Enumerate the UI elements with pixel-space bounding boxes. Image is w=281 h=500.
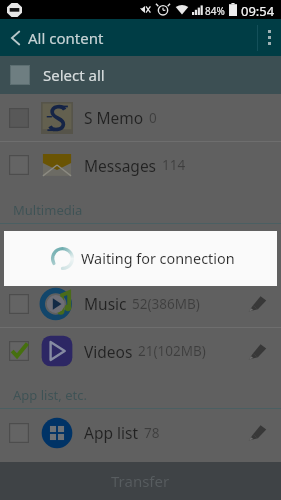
staticText: Select all — [43, 65, 105, 85]
staticText: 114 — [162, 156, 186, 174]
button[interactable]: S Memo — [0, 94, 281, 141]
button[interactable]: Music — [0, 280, 281, 327]
staticText: 78 — [144, 424, 160, 442]
staticText: 52(386MB) — [132, 295, 200, 313]
staticText: App list, etc. — [13, 386, 87, 404]
staticText: Messages — [84, 155, 157, 176]
staticText: Transfer — [111, 471, 170, 491]
button[interactable]: Photos — [0, 224, 281, 280]
button[interactable]: Videos — [0, 328, 281, 374]
staticText: Multimedia — [13, 201, 83, 219]
button[interactable]: Rename — [239, 224, 275, 280]
button[interactable]: App list — [0, 409, 281, 456]
button[interactable]: More options — [258, 19, 281, 56]
staticText: Waiting for connection — [81, 249, 235, 269]
staticText: 0 — [149, 109, 157, 127]
staticText: Photos — [84, 242, 135, 263]
staticText: 84% — [205, 4, 225, 18]
button[interactable]: Rename — [239, 328, 275, 374]
staticText: 21(102MB) — [138, 342, 206, 360]
staticText: 09:54 — [241, 2, 275, 20]
button[interactable]: All content — [0, 19, 112, 56]
staticText: Videos — [84, 341, 133, 362]
button[interactable]: Rename — [239, 280, 275, 327]
staticText: All content — [28, 28, 104, 48]
staticText: 0 — [140, 243, 148, 261]
staticText: Music — [84, 293, 127, 314]
button[interactable]: Messages — [0, 142, 281, 188]
button[interactable]: Select all — [0, 56, 281, 94]
staticText: App list — [84, 422, 139, 443]
button[interactable]: Rename — [239, 409, 275, 456]
staticText: S Memo — [84, 107, 144, 128]
